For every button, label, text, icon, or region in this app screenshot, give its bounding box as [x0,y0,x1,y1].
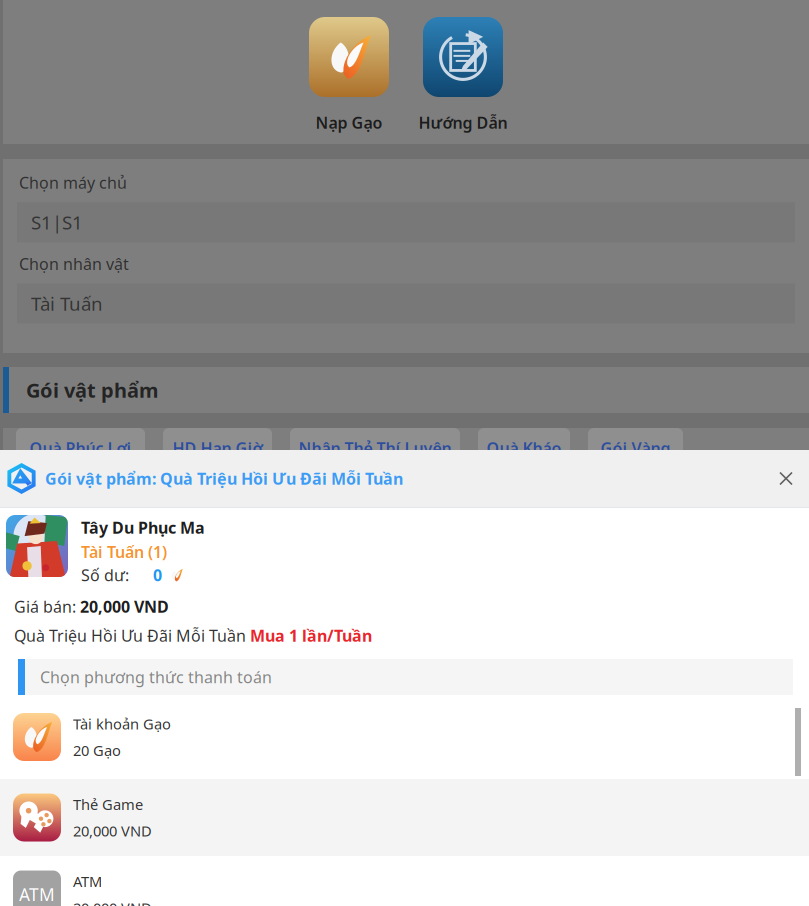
staticText: 0 [153,564,162,586]
button[interactable]: Quà Phúc Lợi [16,428,145,468]
staticText: Số dư: [81,564,129,586]
staticText: Chọn máy chủ [19,172,127,193]
staticText: Tài Tuấn (1) [81,541,167,562]
staticText: Gói vật phẩm: Quà Triệu Hồi Ưu Đãi Mỗi T… [45,468,403,489]
staticText: Hướng Dẫn [418,112,507,133]
staticText: 20 Gạo [73,740,121,760]
staticText: Chọn phương thức thanh toán [40,666,272,688]
staticText: ATM [19,883,55,906]
button[interactable]: Gói Vàng [588,428,683,468]
staticText: Quà Phúc Lợi [29,437,131,459]
button[interactable]: ATM [0,856,809,906]
button[interactable]: Quà Kháo [478,428,570,468]
staticText: 20,000 VND [80,596,169,617]
staticText: 20,000 VND [73,821,152,840]
staticText: Nạp Gạo [315,112,382,133]
staticText: Tài khoản Gạo [73,714,171,733]
button[interactable]: Tài khoản Gạo [0,695,809,779]
staticText: Tài Tuấn [31,291,103,316]
button[interactable]: Hướng Dẫn [423,17,503,133]
staticText: 20,000 VND [73,898,152,906]
staticText: HD Hạn Giờ [172,437,262,459]
staticText: Giá bán: [14,596,80,617]
staticText: Gói vật phẩm [26,377,159,403]
staticText: Thẻ Game [73,794,143,814]
button[interactable]: Close [767,459,805,497]
staticText: Quà Triệu Hồi Ưu Đãi Mỗi Tuần [14,625,250,646]
staticText: Quà Kháo [486,437,561,459]
button[interactable]: Nạp Gạo [309,17,389,133]
staticText: ATM [73,871,102,891]
staticText: Mua 1 lần/Tuần [250,625,372,646]
staticText: S1|S1 [31,210,83,235]
button[interactable]: HD Hạn Giờ [163,428,272,468]
button[interactable]: Thẻ Game [0,779,809,856]
staticText: Tây Du Phục Ma [81,517,205,538]
button[interactable]: Nhận Thẻ Thí Luyện [290,428,460,468]
staticText: Nhận Thẻ Thí Luyện [298,437,451,459]
staticText: Chọn nhân vật [19,253,129,274]
staticText: Gói Vàng [600,437,670,459]
